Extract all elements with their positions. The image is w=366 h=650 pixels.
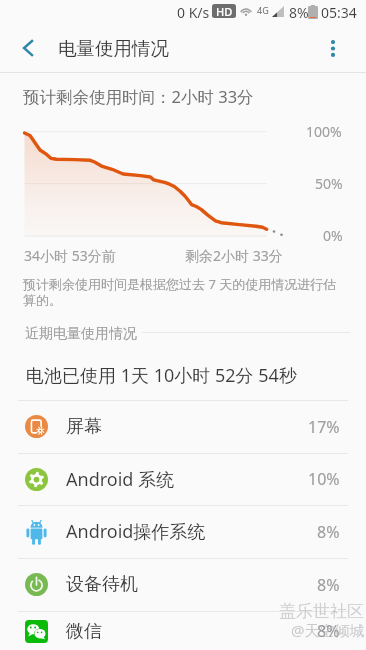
staticText: 05:34: [321, 3, 357, 22]
staticText: 0 K/s: [177, 3, 210, 22]
staticText: 电池已使用 1天 10小时 52分 54秒: [26, 363, 297, 388]
staticText: 预计剩余使用时间是根据您过去 7 天的使用情况进行估算的。: [23, 275, 337, 309]
button[interactable]: Android操作系统: [0, 505, 366, 558]
staticText: Android 系统: [66, 467, 175, 492]
staticText: 100%: [306, 122, 342, 141]
staticText: 设备待机: [66, 573, 138, 596]
staticText: @天空倾城: [291, 620, 365, 640]
button[interactable]: 微信: [0, 611, 366, 650]
button[interactable]: Back: [4, 24, 52, 72]
staticText: 8%: [317, 574, 340, 596]
staticText: 8%: [317, 620, 340, 642]
staticText: 电量使用情况: [58, 37, 169, 60]
staticText: 预计剩余使用时间：2小时 33分: [23, 85, 254, 108]
staticText: 剩余2小时 33分: [185, 246, 283, 265]
staticText: 微信: [66, 620, 102, 643]
staticText: 8%: [289, 3, 309, 22]
staticText: 屏幕: [66, 415, 102, 438]
staticText: 8%: [317, 521, 340, 543]
staticText: 17%: [308, 416, 340, 438]
button[interactable]: 屏幕: [0, 400, 366, 453]
button[interactable]: More options: [309, 24, 357, 72]
button[interactable]: 设备待机: [0, 558, 366, 611]
staticText: 4G: [257, 4, 269, 16]
staticText: Android操作系统: [66, 519, 206, 544]
staticText: 10%: [308, 468, 340, 490]
staticText: 34小时 53分前: [24, 246, 116, 265]
staticText: 50%: [315, 174, 343, 193]
staticText: 0%: [323, 226, 343, 245]
staticText: HD: [216, 4, 233, 18]
button[interactable]: Android 系统: [0, 453, 366, 505]
staticText: 近期电量使用情况: [25, 325, 137, 343]
staticText: 盖乐世社区: [279, 601, 364, 622]
